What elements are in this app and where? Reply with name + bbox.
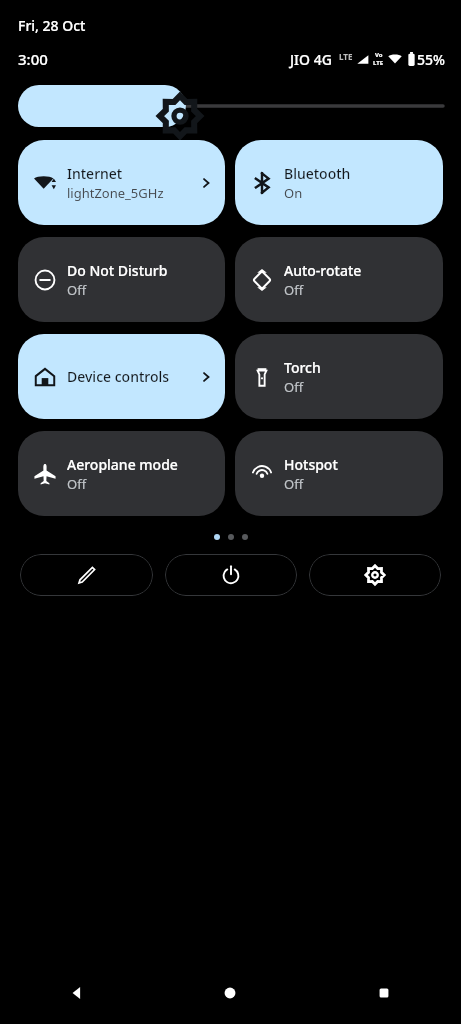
staticText: JIO 4G [290, 50, 332, 69]
button[interactable]: Power [165, 554, 297, 596]
button[interactable]: Aeroplane mode [18, 431, 225, 516]
staticText: LTE [339, 51, 353, 62]
button[interactable]: Auto-rotate [235, 237, 443, 322]
staticText: Auto-rotate [284, 261, 362, 280]
staticText: Off [284, 378, 304, 396]
staticText: lightZone_5GHz [67, 184, 164, 202]
button[interactable]: Bluetooth [235, 140, 443, 225]
staticText: Off [67, 475, 87, 493]
staticText: LTE [373, 59, 384, 67]
button[interactable]: Home [153, 962, 307, 1024]
staticText: Hotspot [284, 455, 338, 474]
button[interactable]: Recent apps [307, 962, 461, 1024]
button[interactable]: Back [0, 962, 153, 1024]
staticText: Internet [67, 164, 123, 183]
staticText: Fri, 28 Oct [18, 16, 86, 35]
staticText: 3:00 [18, 49, 48, 69]
button[interactable]: Brightness [18, 85, 443, 127]
staticText: Aeroplane mode [67, 455, 178, 474]
staticText: Off [284, 475, 304, 493]
button[interactable]: Torch [235, 334, 443, 419]
staticText: Off [284, 281, 304, 299]
staticText: Vo [375, 51, 383, 59]
button[interactable]: Settings [309, 554, 441, 596]
staticText: Do Not Disturb [67, 261, 168, 280]
staticText: Device controls [67, 367, 170, 386]
button[interactable]: Do Not Disturb [18, 237, 225, 322]
staticText: Bluetooth [284, 164, 351, 183]
staticText: Torch [284, 358, 321, 377]
button[interactable]: Hotspot [235, 431, 443, 516]
button[interactable]: Device controls [18, 334, 225, 419]
staticText: 55% [417, 50, 445, 69]
button[interactable]: Edit tiles [20, 554, 153, 596]
button[interactable]: Internet [18, 140, 225, 225]
staticText: Off [67, 281, 87, 299]
staticText: On [284, 184, 303, 202]
